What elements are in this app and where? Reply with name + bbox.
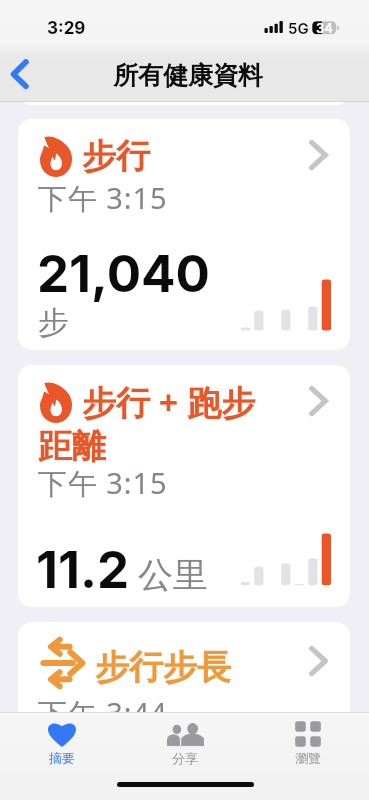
button[interactable]: 步行 [18, 119, 350, 350]
button[interactable]: Back [0, 44, 46, 96]
staticText: 步行 [82, 135, 150, 178]
staticText: 步 [38, 303, 69, 342]
staticText: 瀏覽 [295, 750, 321, 766]
button[interactable]: 分享 [123, 712, 246, 774]
staticText: 摘要 [49, 750, 75, 766]
staticText: 下午 3:44 [38, 693, 168, 732]
staticText: 分享 [172, 750, 198, 766]
staticText: 公里 [138, 553, 208, 597]
button[interactable]: 摘要 [0, 712, 123, 774]
staticText: 步行 + 跑步 [82, 379, 256, 425]
staticText: 步行步長 [95, 646, 231, 689]
staticText: 下午 3:15 [38, 178, 168, 218]
staticText: 所有健康資料 [113, 60, 263, 91]
staticText: 3:29 [47, 18, 86, 39]
staticText: 距離 [38, 425, 106, 468]
button[interactable]: 瀏覽 [246, 712, 369, 774]
button[interactable]: 步行步長 [18, 622, 350, 732]
staticText: 下午 3:15 [38, 463, 168, 503]
button[interactable]: 步行 + 跑步 [18, 365, 350, 607]
staticText: 11.2 [36, 539, 130, 601]
staticText: 5G [288, 19, 309, 37]
staticText: 34 [316, 20, 333, 36]
staticText: 21,040 [37, 243, 210, 305]
